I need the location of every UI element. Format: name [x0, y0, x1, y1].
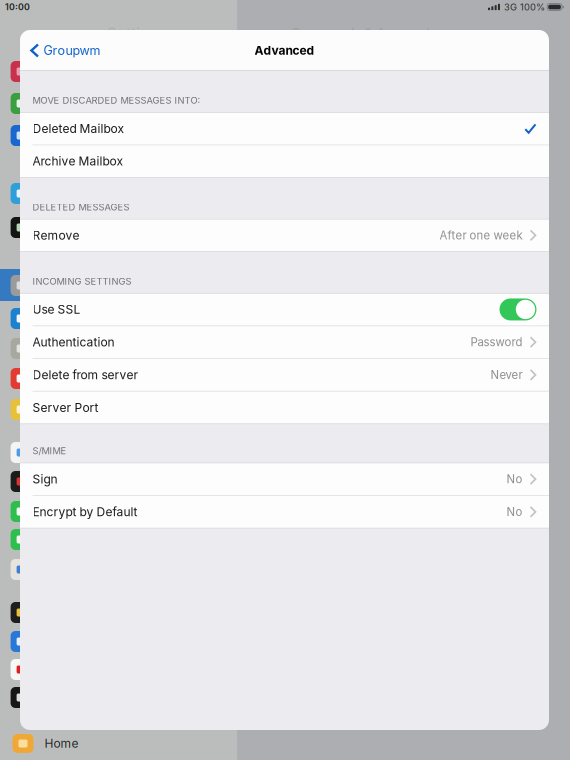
button[interactable]: Sign — [20, 463, 549, 495]
staticText: Sign — [32, 472, 57, 486]
button[interactable]: Groupwm — [20, 30, 110, 71]
staticText: Archive Mailbox — [32, 154, 123, 168]
staticText: INCOMING SETTINGS — [32, 276, 131, 287]
staticText: Delete from server — [32, 368, 138, 382]
staticText: After one week — [439, 228, 522, 242]
button[interactable]: Server Port — [20, 392, 549, 423]
staticText: Groupwm — [43, 43, 100, 58]
staticText: Encrypt by Default — [32, 505, 137, 519]
staticText: DELETED MESSAGES — [32, 201, 129, 213]
staticText: Home — [44, 736, 78, 751]
button[interactable]: Delete from server — [20, 359, 549, 391]
staticText: Password — [470, 335, 522, 349]
staticText: MOVE DISCARDED MESSAGES INTO: — [32, 95, 200, 106]
staticText: Advanced — [254, 43, 314, 58]
staticText: Remove — [32, 228, 79, 243]
button[interactable]: Deleted Mailbox — [20, 113, 549, 144]
staticText: Authentication — [32, 335, 114, 349]
button[interactable]: Encrypt by Default — [20, 496, 549, 528]
button[interactable]: Use SSL — [20, 293, 549, 325]
staticText: Server Port — [32, 400, 98, 415]
button[interactable]: Authentication — [20, 326, 549, 358]
staticText: No — [506, 505, 522, 519]
staticText: Deleted Mailbox — [32, 121, 124, 136]
staticText: Passwords & Accounts — [292, 25, 438, 41]
staticText: 10:00 — [5, 2, 30, 12]
staticText: Never — [490, 368, 522, 382]
staticText: No — [506, 472, 522, 486]
button[interactable]: Archive Mailbox — [20, 145, 549, 177]
button[interactable]: Remove — [20, 219, 549, 251]
staticText: Settings — [107, 24, 166, 42]
staticText: S/MIME — [32, 445, 66, 457]
staticText: Use SSL — [32, 302, 80, 317]
staticText: 3G 100% — [504, 1, 545, 13]
